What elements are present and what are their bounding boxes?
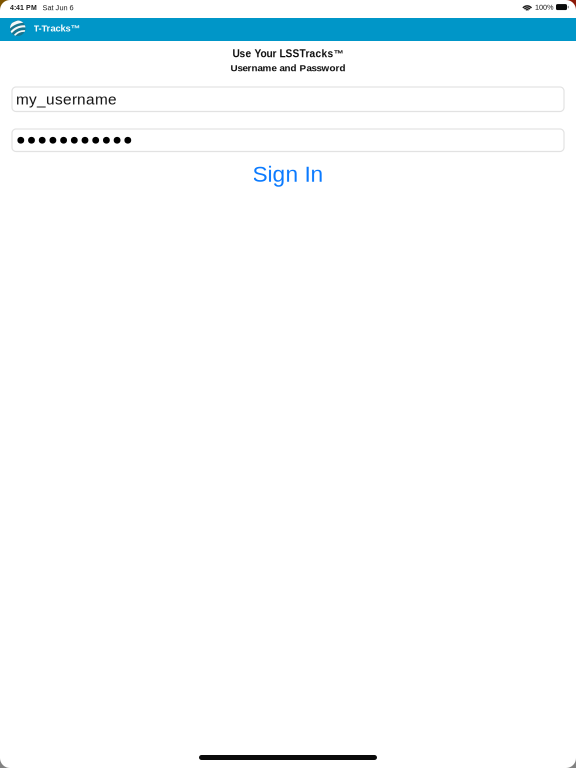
staticText: my_username — [16, 91, 117, 108]
button[interactable]: Sign In — [0, 160, 576, 188]
staticText: 100% — [535, 3, 554, 11]
staticText: 4:41 PM — [10, 4, 37, 11]
staticText: Sign In — [252, 161, 323, 187]
staticText: Use Your LSSTracks™ — [232, 48, 343, 59]
staticText: Username and Password — [230, 62, 345, 73]
staticText: Sat Jun 6 — [42, 3, 73, 12]
staticText: T-Tracks™ — [33, 23, 79, 33]
